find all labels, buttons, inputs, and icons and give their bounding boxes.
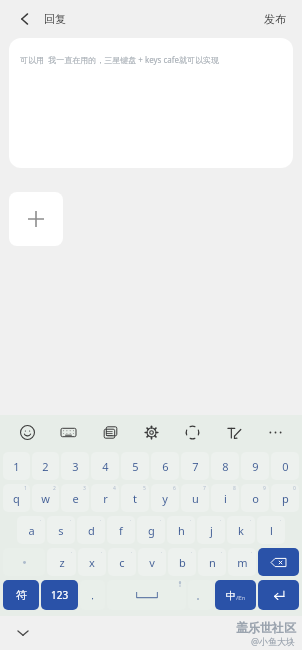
staticText: r: [103, 491, 108, 506]
button[interactable]: i: [211, 484, 239, 512]
button[interactable]: 3: [61, 452, 89, 480]
staticText: u: [192, 491, 199, 506]
button[interactable]: Back: [10, 4, 40, 34]
button[interactable]: 2: [32, 452, 59, 480]
staticText: 123: [51, 588, 69, 602]
staticText: 符: [16, 588, 27, 602]
staticText: 。: [196, 590, 205, 601]
staticText: 3: [72, 459, 79, 474]
staticText: ·: [220, 517, 222, 524]
staticText: n: [209, 555, 216, 570]
button[interactable]: 6: [151, 452, 179, 480]
staticText: ·: [100, 517, 102, 524]
staticText: 2: [42, 459, 49, 474]
button[interactable]: v: [138, 548, 166, 576]
button[interactable]: e: [61, 484, 89, 512]
button[interactable]: Emoji: [14, 419, 40, 445]
button[interactable]: d: [77, 516, 105, 544]
button[interactable]: 符: [3, 580, 39, 610]
button[interactable]: 7: [181, 452, 209, 480]
staticText: 0: [293, 485, 296, 492]
button[interactable]: 5: [121, 452, 149, 480]
button[interactable]: Move keyboard: [179, 419, 205, 445]
button[interactable]: a: [17, 516, 45, 544]
staticText: w: [41, 491, 50, 506]
button[interactable]: g: [137, 516, 165, 544]
staticText: 4: [113, 485, 116, 492]
staticText: o: [252, 491, 259, 506]
staticText: t: [133, 491, 137, 506]
staticText: l: [270, 523, 273, 538]
button[interactable]: Backspace: [258, 548, 299, 576]
staticText: 发布: [264, 12, 286, 26]
staticText: y: [162, 491, 168, 506]
button[interactable]: Shift: [3, 548, 45, 576]
button[interactable]: 123: [41, 580, 78, 610]
button[interactable]: n: [198, 548, 226, 576]
staticText: ·: [131, 549, 133, 556]
button[interactable]: Hide keyboard: [8, 618, 38, 648]
button[interactable]: 9: [241, 452, 269, 480]
button[interactable]: t: [121, 484, 149, 512]
staticText: 1: [13, 459, 20, 474]
button[interactable]: x: [78, 548, 106, 576]
staticText: 1: [24, 485, 27, 492]
staticText: 3: [83, 485, 86, 492]
button[interactable]: ，: [80, 580, 105, 610]
staticText: q: [13, 491, 20, 506]
staticText: s: [58, 523, 64, 538]
button[interactable]: w: [32, 484, 59, 512]
button[interactable]: b: [168, 548, 196, 576]
staticText: v: [149, 555, 155, 570]
staticText: i: [224, 491, 227, 506]
button[interactable]: h: [167, 516, 195, 544]
staticText: ·: [251, 549, 253, 556]
button[interactable]: Keyboard: [55, 419, 81, 445]
staticText: 中: [226, 589, 236, 602]
button[interactable]: Enter: [258, 580, 299, 610]
button[interactable]: 8: [211, 452, 239, 480]
staticText: ·: [160, 517, 162, 524]
button[interactable]: k: [227, 516, 255, 544]
button[interactable]: 1: [3, 452, 30, 480]
button[interactable]: 0: [271, 452, 299, 480]
staticText: 盖乐世社区: [236, 620, 296, 635]
button[interactable]: f: [107, 516, 135, 544]
button[interactable]: q: [3, 484, 30, 512]
button[interactable]: z: [47, 548, 76, 576]
staticText: 回复: [44, 12, 66, 26]
button[interactable]: r: [91, 484, 119, 512]
staticText: e: [72, 491, 79, 506]
staticText: ·: [161, 549, 163, 556]
button[interactable]: 可以用 我一直在用的，三星键盘 + keys cafe就可以实现: [9, 38, 293, 168]
staticText: ·: [70, 517, 72, 524]
staticText: ·: [190, 517, 192, 524]
button[interactable]: 中: [215, 580, 256, 610]
button[interactable]: Handwriting: [221, 419, 247, 445]
button[interactable]: Settings: [138, 419, 164, 445]
button[interactable]: 4: [91, 452, 119, 480]
staticText: x: [89, 555, 95, 570]
button[interactable]: u: [181, 484, 209, 512]
staticText: f: [119, 523, 123, 538]
staticText: ·: [221, 549, 223, 556]
button[interactable]: y: [151, 484, 179, 512]
button[interactable]: Add image: [9, 192, 63, 246]
staticText: j: [210, 523, 213, 538]
button[interactable]: 。: [188, 580, 213, 610]
staticText: 7: [192, 459, 199, 474]
button[interactable]: Clipboard: [97, 419, 123, 445]
button[interactable]: o: [241, 484, 269, 512]
button[interactable]: More options: [262, 419, 288, 445]
button[interactable]: 发布: [258, 6, 292, 32]
staticText: b: [179, 555, 186, 570]
staticText: ·: [71, 549, 73, 556]
button[interactable]: l: [257, 516, 285, 544]
button[interactable]: p: [271, 484, 299, 512]
staticText: 7: [203, 485, 206, 492]
button[interactable]: j: [197, 516, 225, 544]
button[interactable]: m: [228, 548, 256, 576]
button[interactable]: Space: [107, 580, 186, 610]
button[interactable]: s: [47, 516, 75, 544]
button[interactable]: c: [108, 548, 136, 576]
